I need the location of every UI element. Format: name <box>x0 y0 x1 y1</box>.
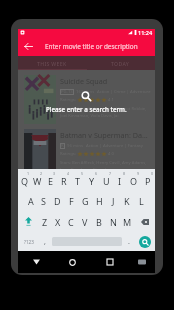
staticText: I <box>118 175 122 187</box>
button[interactable]: 8 <box>113 169 127 190</box>
staticText: 4.0 <box>108 151 114 157</box>
staticText: J <box>112 195 115 207</box>
button[interactable]: A <box>24 190 37 211</box>
button[interactable]: 1 <box>18 169 31 190</box>
staticText: T <box>75 175 81 187</box>
staticText: X <box>55 216 61 228</box>
button[interactable]: C <box>64 211 78 232</box>
staticText: PG-13 <box>61 89 73 95</box>
staticText: V <box>82 216 88 228</box>
staticText: R <box>61 175 67 187</box>
button[interactable]: 9 <box>127 169 141 190</box>
button[interactable]: Z <box>38 211 51 232</box>
staticText: . <box>128 237 130 247</box>
staticText: Ratings: <box>60 97 76 103</box>
staticText: , <box>44 237 46 247</box>
staticText: Action | Crime | Adventure <box>97 89 151 95</box>
button[interactable]: X <box>51 211 64 232</box>
staticText: ?123 <box>24 239 34 245</box>
staticText: W <box>33 175 42 187</box>
staticText: 163 mins <box>76 89 95 95</box>
button[interactable]: K <box>120 190 134 211</box>
staticText: L <box>139 195 144 207</box>
button[interactable]: 4 <box>57 169 71 190</box>
button[interactable]: 5 <box>71 169 85 190</box>
staticText: 4 <box>67 171 70 176</box>
staticText: THIS WEEK <box>37 60 67 67</box>
button[interactable]: ?123 <box>18 232 39 251</box>
button[interactable]: L <box>134 190 148 211</box>
staticText: 4.1 <box>108 97 114 103</box>
staticText: A <box>28 195 34 207</box>
button[interactable]: B <box>92 211 106 232</box>
staticText: 3 <box>53 171 56 176</box>
button[interactable]: D <box>50 190 64 211</box>
button[interactable]: 7 <box>99 169 113 190</box>
staticText: M <box>123 216 132 228</box>
button[interactable]: 6 <box>85 169 99 190</box>
staticText: 7 <box>109 171 112 176</box>
staticText: Batman v Superman: Dawn... <box>60 130 153 140</box>
staticText: 1 <box>27 171 30 176</box>
button[interactable]: N <box>106 211 120 232</box>
staticText: Action | Adventure | Fantasy <box>86 143 143 149</box>
staticText: N <box>110 216 117 228</box>
staticText: R <box>61 143 64 149</box>
button[interactable]: 0 <box>141 169 155 190</box>
staticText: 11:24 <box>138 29 153 36</box>
button[interactable]: 2 <box>31 169 44 190</box>
staticText: 9 <box>137 171 140 176</box>
staticText: Q <box>21 175 29 187</box>
staticText: S <box>41 195 46 207</box>
staticText: 8 <box>123 171 126 176</box>
staticText: Stars: Ben Affleck, Henry Cavill, Amy Ad… <box>60 160 153 169</box>
staticText: F <box>69 195 74 207</box>
button[interactable]: Back <box>18 36 38 56</box>
button[interactable]: Search <box>135 232 155 251</box>
button[interactable]: , <box>39 232 51 251</box>
button[interactable]: Home <box>54 251 91 273</box>
button[interactable]: J <box>106 190 120 211</box>
button[interactable]: S <box>37 190 50 211</box>
button[interactable]: F <box>64 190 78 211</box>
button[interactable]: Backspace <box>134 211 155 232</box>
staticText: 2 <box>40 171 43 176</box>
staticText: O <box>130 175 138 187</box>
staticText: Ratings: <box>60 151 76 157</box>
button[interactable]: 3 <box>44 169 57 190</box>
button[interactable]: THIS WEEK <box>18 56 86 70</box>
staticText: 5 <box>81 171 84 176</box>
button[interactable]: TODAY <box>86 56 155 70</box>
staticText: Z <box>42 216 48 228</box>
staticText: E <box>48 175 54 187</box>
staticText: Y <box>89 175 95 187</box>
button[interactable]: G <box>78 190 92 211</box>
button[interactable]: Back <box>18 251 54 273</box>
button[interactable]: Shift <box>18 211 38 232</box>
staticText: H <box>96 195 103 207</box>
button[interactable]: Recent apps <box>91 251 128 273</box>
staticText: TODAY <box>111 60 130 67</box>
button[interactable]: H <box>92 190 106 211</box>
staticText: 6 <box>95 171 98 176</box>
button[interactable]: . <box>123 232 135 251</box>
staticText: P <box>145 175 151 187</box>
button[interactable]: Hide keyboard <box>128 251 155 273</box>
staticText: B <box>96 216 102 228</box>
staticText: 0 <box>151 171 154 176</box>
staticText: Please enter a search term. <box>46 105 127 113</box>
staticText: K <box>124 195 130 207</box>
button[interactable]: M <box>120 211 134 232</box>
staticText: U <box>103 175 110 187</box>
staticText: Suicide Squad <box>60 76 108 86</box>
staticText: Stars: Will Smith, Jared Leto, Margot Ro… <box>60 106 153 118</box>
button[interactable]: V <box>78 211 92 232</box>
staticText: C <box>68 216 74 228</box>
staticText: G <box>82 195 89 207</box>
staticText: Enter movie title or description <box>45 42 138 51</box>
staticText: D <box>54 195 61 207</box>
